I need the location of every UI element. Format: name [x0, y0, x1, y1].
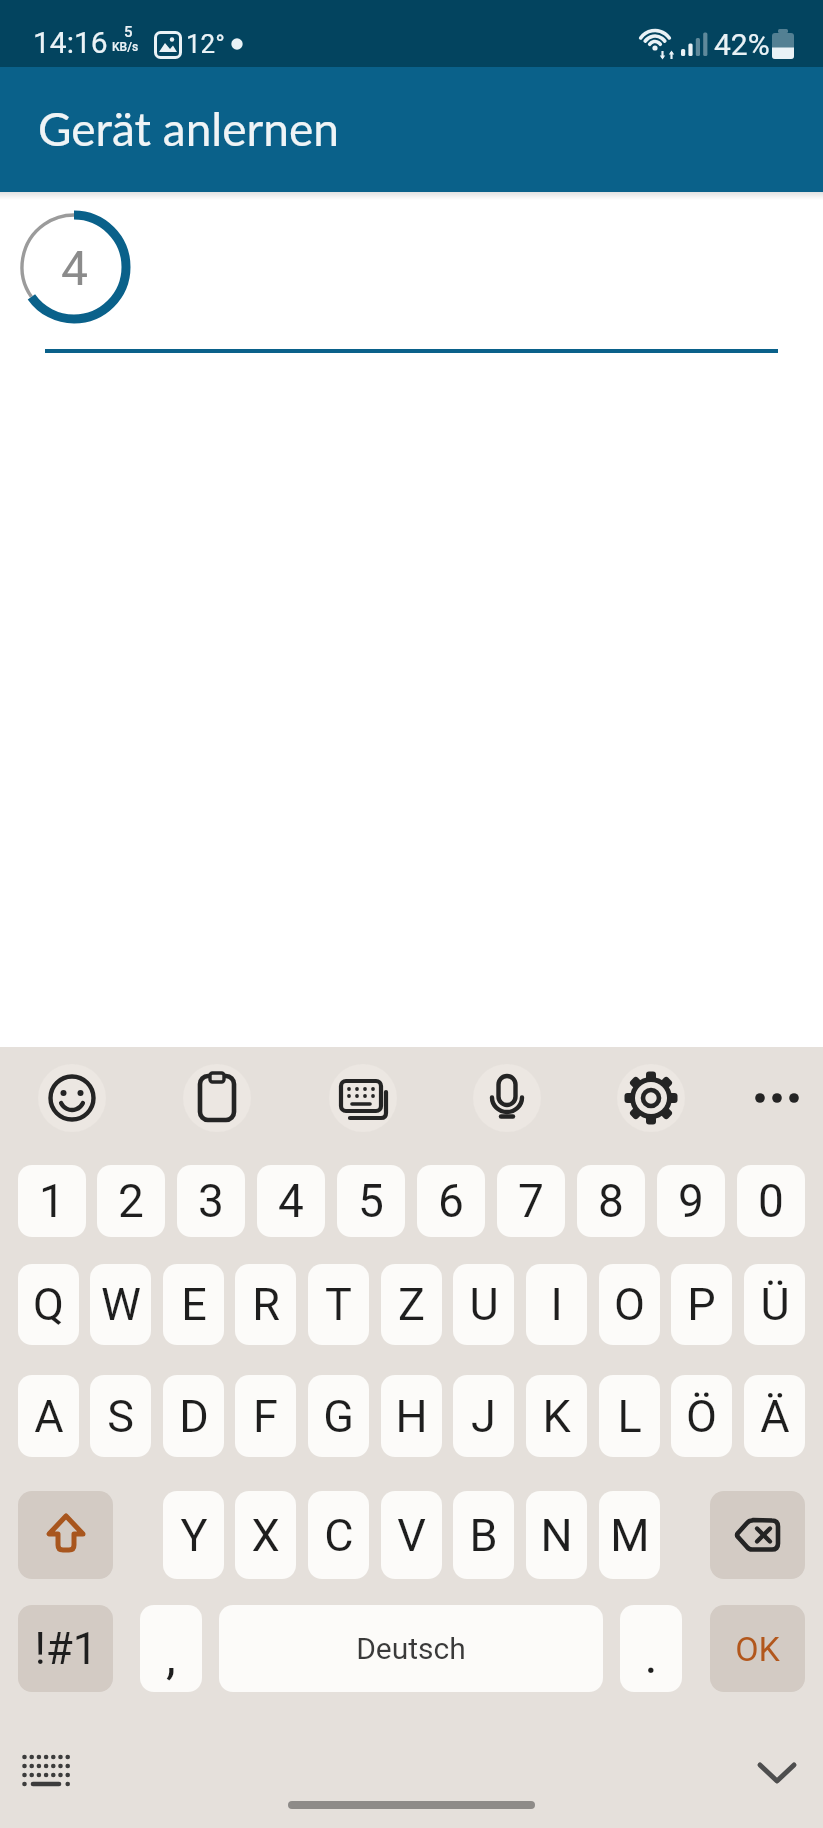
- staticText: 42%: [714, 27, 770, 62]
- button[interactable]: R: [235, 1264, 296, 1345]
- staticText: Ä: [760, 1390, 790, 1443]
- staticText: W: [101, 1278, 141, 1331]
- staticText: P: [687, 1278, 716, 1331]
- staticText: ,: [166, 1627, 176, 1686]
- button[interactable]: I: [526, 1264, 587, 1345]
- staticText: T: [325, 1278, 352, 1331]
- staticText: KB/s: [112, 40, 139, 54]
- button[interactable]: [18, 1491, 113, 1579]
- button[interactable]: F: [235, 1375, 296, 1457]
- button[interactable]: 6: [417, 1165, 485, 1237]
- button[interactable]: D: [163, 1375, 224, 1457]
- button[interactable]: U: [453, 1264, 514, 1345]
- staticText: B: [469, 1509, 498, 1562]
- button[interactable]: 7: [497, 1165, 565, 1237]
- staticText: A: [34, 1390, 64, 1443]
- button[interactable]: K: [526, 1375, 587, 1457]
- staticText: 7: [518, 1174, 544, 1228]
- button[interactable]: [710, 1491, 805, 1579]
- button[interactable]: B: [453, 1491, 514, 1579]
- button[interactable]: 4: [257, 1165, 325, 1237]
- staticText: 1: [39, 1174, 65, 1228]
- button[interactable]: H: [381, 1375, 442, 1457]
- button[interactable]: [38, 1064, 106, 1132]
- button[interactable]: Ü: [744, 1264, 805, 1345]
- staticText: Ö: [686, 1390, 717, 1443]
- staticText: 4: [278, 1174, 304, 1228]
- staticText: R: [252, 1278, 280, 1331]
- button[interactable]: G: [308, 1375, 369, 1457]
- button[interactable]: W: [90, 1264, 151, 1345]
- staticText: 0: [758, 1174, 784, 1228]
- button[interactable]: 5: [337, 1165, 405, 1237]
- button[interactable]: M: [599, 1491, 660, 1579]
- staticText: C: [324, 1509, 354, 1562]
- staticText: Ü: [760, 1278, 790, 1331]
- button[interactable]: [21, 1753, 71, 1795]
- button[interactable]: Y: [163, 1491, 224, 1579]
- button[interactable]: N: [526, 1491, 587, 1579]
- button[interactable]: X: [235, 1491, 296, 1579]
- staticText: D: [179, 1390, 209, 1443]
- staticText: !#1: [34, 1623, 98, 1675]
- button[interactable]: Q: [18, 1264, 79, 1345]
- staticText: Deutsch: [356, 1631, 466, 1666]
- button[interactable]: [288, 1801, 535, 1809]
- staticText: 9: [678, 1174, 704, 1228]
- button[interactable]: [757, 1760, 797, 1788]
- staticText: 8: [598, 1174, 624, 1228]
- staticText: G: [323, 1390, 354, 1443]
- staticText: 2: [118, 1174, 144, 1228]
- button[interactable]: E: [163, 1264, 224, 1345]
- button[interactable]: [617, 1064, 685, 1132]
- button[interactable]: 1: [18, 1165, 86, 1237]
- button[interactable]: T: [308, 1264, 369, 1345]
- button[interactable]: .: [620, 1605, 682, 1692]
- button[interactable]: Ä: [744, 1375, 805, 1457]
- staticText: 14:16: [33, 25, 108, 60]
- button[interactable]: [183, 1064, 251, 1132]
- button[interactable]: 0: [737, 1165, 805, 1237]
- staticText: K: [542, 1390, 571, 1443]
- button[interactable]: J: [453, 1375, 514, 1457]
- button[interactable]: [45, 205, 778, 353]
- button[interactable]: [738, 1064, 806, 1132]
- button[interactable]: ,: [140, 1605, 202, 1692]
- staticText: X: [251, 1509, 280, 1562]
- button[interactable]: 3: [177, 1165, 245, 1237]
- button[interactable]: 2: [97, 1165, 165, 1237]
- button[interactable]: S: [90, 1375, 151, 1457]
- staticText: N: [540, 1509, 573, 1562]
- button[interactable]: 9: [657, 1165, 725, 1237]
- staticText: Z: [398, 1278, 425, 1331]
- button[interactable]: Ö: [671, 1375, 732, 1457]
- staticText: J: [471, 1390, 496, 1443]
- staticText: Gerät anlernen: [38, 101, 339, 156]
- button[interactable]: C: [308, 1491, 369, 1579]
- button[interactable]: P: [671, 1264, 732, 1345]
- button[interactable]: V: [381, 1491, 442, 1579]
- staticText: Q: [33, 1278, 64, 1331]
- staticText: V: [397, 1509, 426, 1562]
- staticText: 5: [124, 23, 133, 41]
- staticText: 12°: [186, 29, 225, 59]
- button[interactable]: 8: [577, 1165, 645, 1237]
- button[interactable]: O: [599, 1264, 660, 1345]
- staticText: 5: [358, 1174, 384, 1228]
- staticText: OK: [735, 1629, 780, 1669]
- button[interactable]: Deutsch: [219, 1605, 603, 1692]
- staticText: Y: [180, 1509, 208, 1562]
- staticText: L: [617, 1390, 642, 1443]
- button[interactable]: Z: [381, 1264, 442, 1345]
- button[interactable]: OK: [710, 1605, 805, 1692]
- staticText: 6: [438, 1174, 464, 1228]
- staticText: E: [181, 1278, 207, 1331]
- button[interactable]: [473, 1064, 541, 1132]
- staticText: H: [395, 1390, 428, 1443]
- button[interactable]: [329, 1064, 397, 1132]
- staticText: .: [644, 1627, 658, 1686]
- button[interactable]: !#1: [18, 1605, 113, 1692]
- button[interactable]: L: [599, 1375, 660, 1457]
- button[interactable]: A: [18, 1375, 79, 1457]
- staticText: F: [253, 1390, 278, 1443]
